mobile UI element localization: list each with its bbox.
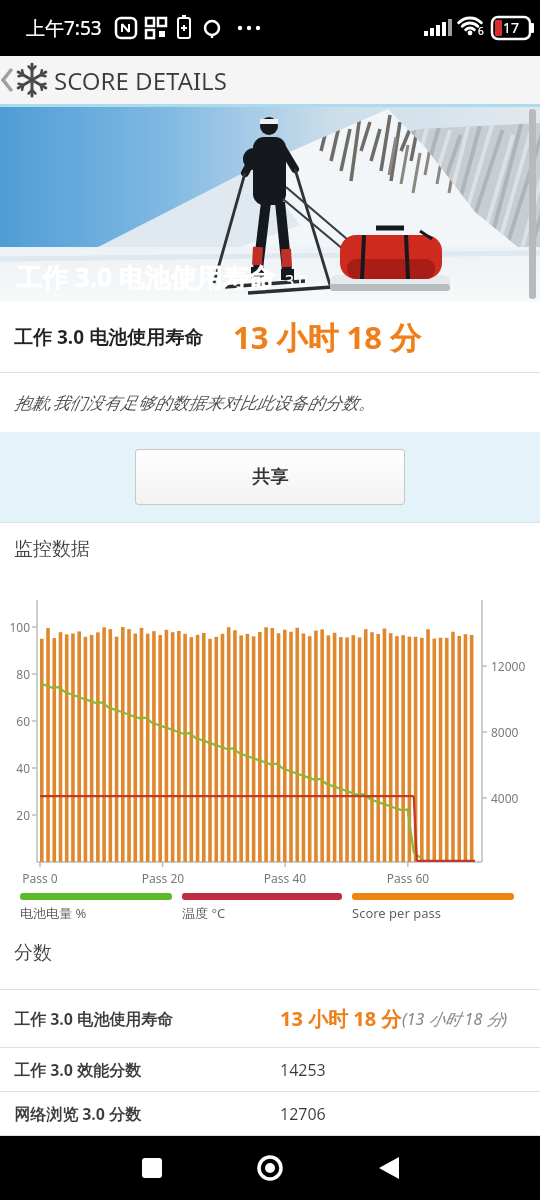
button[interactable]: 工作 3.0 效能分数 [0, 1048, 540, 1091]
staticText: 抱歉,我们没有足够的数据来对比此设备的分数。 [14, 391, 376, 414]
staticText: 工作 3.0 电池使用寿命 [16, 259, 275, 295]
staticText: 20 [0, 807, 30, 823]
staticText: 6 [478, 24, 484, 38]
staticText: 8000 [491, 724, 519, 740]
staticText: 分数 [14, 941, 52, 965]
staticText: 40 [0, 760, 30, 776]
staticText: 12706 [280, 1103, 326, 1125]
button[interactable] [120, 1136, 184, 1200]
staticText: 上午7:53 [26, 15, 102, 41]
button[interactable]: 共享 [136, 450, 404, 504]
button[interactable]: 网络浏览 3.0 分数 [0, 1092, 540, 1135]
staticText: 工作 3.0 电池使用寿命 [14, 1008, 280, 1030]
staticText: 电池电量 % [20, 904, 87, 922]
staticText: Pass 60 [368, 870, 448, 886]
staticText: 工作 3.0 电池使用寿命 [14, 324, 203, 350]
staticText: 共享 [252, 466, 288, 489]
staticText: 网络浏览 3.0 分数 [14, 1103, 280, 1125]
staticText: (13 小时 18 分) [402, 1008, 508, 1030]
staticText: 100 [0, 619, 30, 635]
staticText: 60 [0, 713, 30, 729]
staticText: 13 小时 18 分 [280, 1005, 402, 1032]
staticText: 温度 °C [182, 904, 226, 922]
button[interactable]: 工作 3.0 电池使用寿命 [0, 990, 540, 1047]
staticText: 12000 [491, 658, 526, 674]
staticText: 监控数据 [14, 537, 90, 561]
button[interactable]: SCORE DETAILS [0, 56, 540, 104]
staticText: Pass 0 [0, 870, 80, 886]
staticText: 4000 [491, 790, 519, 806]
staticText: Pass 40 [245, 870, 325, 886]
staticText: 工作 3.0 效能分数 [14, 1059, 280, 1081]
staticText: 13 小时 18 分 [233, 316, 422, 358]
staticText: 17 [503, 18, 520, 37]
button[interactable] [238, 1136, 302, 1200]
staticText: 80 [0, 666, 30, 682]
staticText: 3.0 [285, 270, 308, 292]
staticText: Pass 20 [123, 870, 203, 886]
staticText: SCORE DETAILS [54, 64, 227, 97]
button[interactable] [356, 1136, 420, 1200]
staticText: 14253 [280, 1059, 326, 1081]
staticText: Score per pass [352, 904, 441, 922]
